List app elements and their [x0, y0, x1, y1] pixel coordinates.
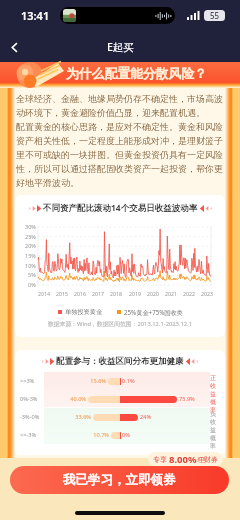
staticText: 40.0% [70, 395, 86, 403]
staticText: 配置黄金的核心思路，是应对不确定性。黄金和风险 [16, 121, 223, 132]
staticText: <=-3% [20, 431, 37, 439]
staticText: >=3% [20, 377, 35, 385]
staticText: 动环境下，黄金避险价值凸显，迎来配置机遇。 [16, 107, 205, 118]
staticText: 0%-3% [20, 395, 38, 403]
staticText: 好地平滑波动。 [16, 177, 79, 188]
staticText: 2014 [38, 290, 50, 297]
staticText: 理财券 [197, 455, 218, 464]
staticText: 2019 [129, 290, 141, 297]
staticText: 数据来源：Wind，数据区间范围：2013.12.1-2023.12.1 [15, 320, 225, 328]
staticText: 8.00% [169, 453, 197, 466]
staticText: 2018 [110, 290, 122, 297]
staticText: 率 [210, 406, 216, 414]
staticText: 10.7% [93, 431, 109, 439]
staticText: 55 [210, 10, 220, 21]
staticText: 为什么配置能分散风险？ [66, 66, 207, 82]
staticText: 益 [210, 426, 216, 434]
staticText: 10% [25, 262, 36, 269]
staticText: 资产相关性低，一定程度上能形成对冲，是理财篮子 [16, 135, 223, 146]
staticText: 2015 [56, 290, 68, 297]
staticText: 25%黄金+75%国收类 [124, 308, 183, 316]
staticText: 5% [28, 271, 36, 278]
staticText: 2022 [183, 290, 195, 297]
staticText: 15% [25, 252, 36, 259]
staticText: 全球经济、金融、地缘局势仍存不确定性，市场高波 [16, 93, 223, 104]
staticText: 13:41 [21, 8, 50, 23]
button[interactable]: Back [0, 32, 28, 62]
staticText: 性，所以可以通过搭配固收类资产一起投资，帮你更 [16, 163, 223, 174]
staticText: 我已学习，立即领券 [63, 472, 176, 488]
staticText: 2023 [201, 290, 213, 297]
staticText: 0% [28, 281, 36, 288]
staticText: 益 [210, 390, 216, 398]
staticText: 不同资产配比滚动14个交易日收益波动率 [43, 202, 198, 214]
staticText: 率 [210, 442, 216, 450]
staticText: 20% [25, 242, 36, 249]
staticText: 收 [210, 418, 216, 426]
staticText: 配置参与：收益区间分布更加健康 [56, 356, 184, 367]
staticText: 负 [210, 410, 216, 418]
staticText: 收 [210, 382, 216, 390]
staticText: 0% [122, 431, 130, 439]
staticText: 专享 [153, 455, 169, 465]
staticText: 30% [25, 223, 36, 230]
staticText: 33.6% [75, 413, 91, 421]
button[interactable]: 我已学习，立即领券 [10, 466, 229, 494]
staticText: E起买 [107, 40, 134, 54]
staticText: 24% [140, 413, 152, 421]
staticText: 里不可或缺的一块拼图。但黄金投资仍具有一定风险 [16, 149, 223, 160]
staticText: 75.9% [179, 395, 195, 403]
staticText: 单独投资黄金 [65, 308, 103, 316]
staticText: 概 [210, 398, 216, 406]
staticText: 0.1% [122, 377, 135, 385]
staticText: 2020 [147, 290, 159, 297]
staticText: -3%-0% [20, 413, 40, 421]
staticText: 2021 [165, 290, 177, 297]
staticText: 概 [210, 434, 216, 442]
staticText: 2017 [92, 290, 104, 297]
staticText: 25% [25, 233, 36, 240]
staticText: 15.6% [90, 377, 106, 385]
staticText: 2016 [74, 290, 86, 297]
staticText: 正 [210, 374, 216, 382]
